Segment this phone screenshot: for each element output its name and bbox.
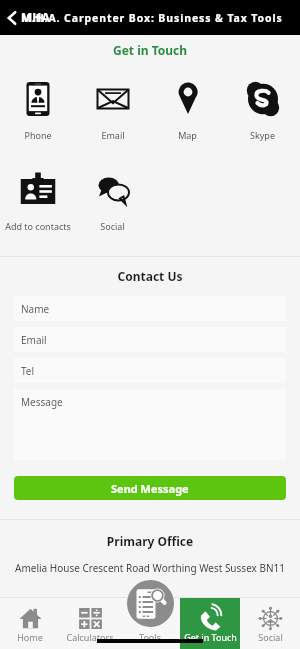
staticText: Phone — [24, 129, 52, 141]
staticText: Get in Touch — [184, 631, 237, 643]
button[interactable]: Social — [75, 0, 150, 234]
button[interactable]: Email — [14, 327, 286, 352]
staticText: Home — [17, 631, 43, 643]
staticText: Email — [21, 333, 47, 347]
staticText: Map — [178, 129, 197, 141]
button[interactable]: Send Message — [14, 476, 286, 500]
button[interactable]: Name — [14, 296, 286, 321]
staticText: Amelia House Crescent Road Worthing West… — [0, 561, 300, 575]
staticText: Tools — [139, 631, 161, 643]
staticText: Send Message — [111, 481, 189, 496]
staticText: M.H.A. Carpenter Box: Business & Tax Too… — [21, 11, 283, 25]
staticText: Calculators — [66, 631, 114, 643]
staticText: Name — [21, 302, 50, 316]
staticText: Email — [101, 129, 125, 141]
staticText: Social — [258, 631, 283, 643]
staticText: Primary Office — [0, 533, 300, 549]
button[interactable]: Tools — [127, 580, 174, 627]
button[interactable]: Phone — [0, 0, 75, 143]
button[interactable]: Add to contacts — [0, 0, 75, 234]
button[interactable]: Get in Touch — [180, 597, 240, 649]
button[interactable]: Map — [150, 0, 225, 143]
button[interactable]: Skype — [225, 0, 300, 143]
button[interactable]: Home — [0, 597, 60, 649]
staticText: Contact Us — [0, 268, 300, 284]
staticText: Social — [100, 220, 125, 232]
staticText: Tel — [21, 364, 35, 378]
staticText: Skype — [250, 129, 275, 141]
staticText: MHA — [21, 9, 50, 25]
button[interactable]: Email — [75, 0, 150, 143]
button[interactable]: Tools — [120, 597, 180, 649]
button[interactable]: Back — [0, 0, 18, 35]
button[interactable]: Message — [14, 389, 286, 460]
button[interactable]: Calculators — [60, 597, 120, 649]
staticText: Get in Touch — [0, 42, 300, 58]
button[interactable]: Tel — [14, 358, 286, 383]
button[interactable]: Social — [240, 597, 300, 649]
staticText: Message — [21, 395, 63, 409]
staticText: Add to contacts — [5, 220, 71, 232]
